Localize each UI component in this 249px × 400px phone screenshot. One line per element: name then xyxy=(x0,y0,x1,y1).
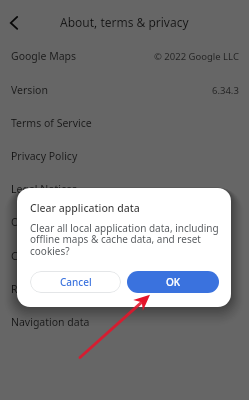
staticText: Privacy Policy xyxy=(11,149,78,163)
staticText: Navigation data xyxy=(11,315,90,329)
staticText: Legal Notices xyxy=(11,182,78,196)
button[interactable]: Navigation data xyxy=(0,305,249,339)
staticText: Cancel xyxy=(60,275,92,289)
button[interactable]: Open source licences xyxy=(0,205,249,239)
staticText: Version xyxy=(11,83,48,97)
staticText: OK xyxy=(166,275,181,289)
button[interactable]: Report a problem xyxy=(0,272,249,306)
button[interactable]: Back xyxy=(0,8,28,36)
staticText: Report a problem xyxy=(11,282,98,296)
button[interactable]: OK xyxy=(127,271,219,293)
button[interactable]: Legal Notices xyxy=(0,172,249,206)
staticText: Open source licences xyxy=(11,215,116,229)
button[interactable]: Terms of Service xyxy=(0,106,249,140)
staticText: Google Maps xyxy=(11,49,77,63)
button[interactable]: Clear application data xyxy=(0,239,249,273)
staticText: Terms of Service xyxy=(11,116,92,130)
staticText: © 2022 Google LLC xyxy=(154,50,239,63)
staticText: Clear application data xyxy=(30,201,140,215)
staticText: Clear all local application data, includ… xyxy=(30,221,220,258)
staticText: About, terms & privacy xyxy=(60,14,189,30)
button[interactable]: Google Maps xyxy=(0,39,249,73)
staticText: Clear application data xyxy=(11,249,119,263)
button[interactable]: Privacy Policy xyxy=(0,139,249,173)
staticText: 6.34.3 xyxy=(212,84,239,97)
button[interactable]: Version xyxy=(0,73,249,107)
button[interactable]: Cancel xyxy=(30,271,121,293)
